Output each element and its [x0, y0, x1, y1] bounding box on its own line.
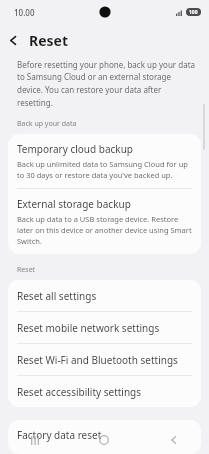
staticText: Reset Wi-Fi and Bluetooth settings	[17, 353, 178, 367]
button[interactable]: Home	[92, 428, 116, 452]
staticText: Reset all settings	[17, 289, 97, 303]
staticText: Back up unlimited data to Samsung Cloud …	[17, 159, 195, 180]
button[interactable]: Factory data reset	[8, 420, 201, 454]
staticText: External storage backup	[17, 197, 131, 211]
staticText: 100	[189, 9, 198, 16]
button[interactable]: Back	[0, 27, 26, 53]
staticText: Reset	[29, 31, 69, 50]
staticText: Reset	[17, 265, 36, 275]
button[interactable]: External storage backup	[8, 189, 201, 254]
button[interactable]: Recent apps	[23, 428, 47, 452]
button[interactable]: Reset all settings	[8, 280, 201, 311]
staticText: Reset accessibility settings	[17, 385, 142, 399]
staticText: Temporary cloud backup	[17, 142, 134, 156]
staticText: Back up your data	[17, 119, 77, 129]
button[interactable]: Back	[162, 428, 186, 452]
staticText: Factory data reset	[17, 428, 102, 442]
button[interactable]: Temporary cloud backup	[8, 134, 201, 188]
staticText: 10.00	[14, 7, 35, 18]
staticText: Back up data to a USB storage device. Re…	[17, 214, 195, 246]
staticText: Before resetting your phone, back up you…	[17, 59, 196, 109]
button[interactable]: Reset mobile network settings	[8, 312, 201, 343]
staticText: Reset mobile network settings	[17, 321, 160, 335]
button[interactable]: Reset accessibility settings	[8, 376, 201, 407]
button[interactable]: Reset Wi-Fi and Bluetooth settings	[8, 344, 201, 375]
